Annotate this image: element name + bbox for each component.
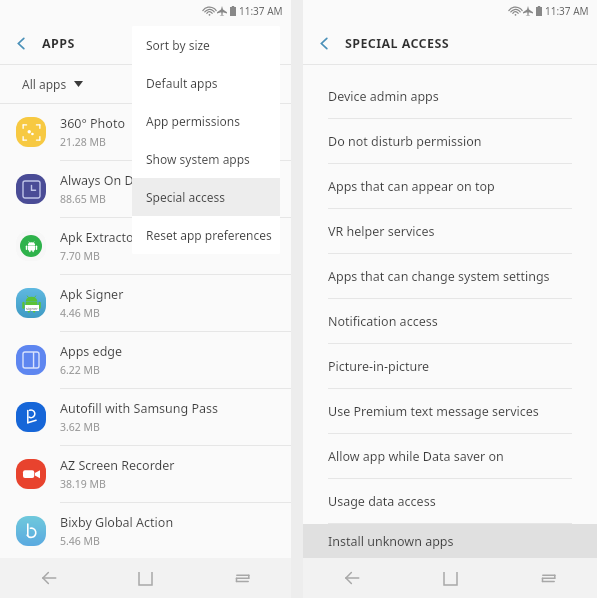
staticText: 7.70 MB xyxy=(60,249,100,263)
staticText: Device admin apps xyxy=(328,88,439,105)
staticText: 360° Photo xyxy=(60,115,125,132)
button[interactable]: Use Premium text message services xyxy=(303,389,597,433)
staticText: Notification access xyxy=(328,313,438,330)
button[interactable]: All apps xyxy=(0,65,291,103)
button[interactable]: Default apps xyxy=(132,64,280,102)
button[interactable]: Apps that can appear on top xyxy=(303,164,597,208)
staticText: Install unknown apps xyxy=(328,533,454,550)
staticText: Apps that can appear on top xyxy=(328,178,495,195)
button[interactable]: Back xyxy=(0,558,97,598)
button[interactable]: Recents xyxy=(499,558,597,598)
button[interactable]: Picture-in-picture xyxy=(303,344,597,388)
button[interactable]: Do not disturb permission xyxy=(303,119,597,163)
button[interactable]: Home xyxy=(401,558,499,598)
button[interactable]: 360° Photo xyxy=(0,104,291,160)
button[interactable]: Install unknown apps xyxy=(303,524,597,558)
button[interactable]: Autofill with Samsung Pass xyxy=(0,389,291,445)
staticText: Use Premium text message services xyxy=(328,403,539,420)
button[interactable]: Usage data access xyxy=(303,479,597,523)
staticText: 38.19 MB xyxy=(60,477,106,491)
staticText: Apk Extractor xyxy=(60,229,139,246)
button[interactable]: Apps that can change system settings xyxy=(303,254,597,298)
button[interactable]: Show system apps xyxy=(132,140,280,178)
staticText: Do not disturb permission xyxy=(328,133,482,150)
staticText: Apk Signer xyxy=(60,286,124,303)
staticText: Bixby Global Action xyxy=(60,514,174,531)
staticText: Show system apps xyxy=(146,151,250,167)
staticText: SPECIAL ACCESS xyxy=(345,35,450,52)
button[interactable]: Back xyxy=(303,22,345,64)
button[interactable]: App permissions xyxy=(132,102,280,140)
button[interactable]: Sort by size xyxy=(132,26,280,64)
staticText: Autofill with Samsung Pass xyxy=(60,400,219,417)
staticText: 11:37 AM xyxy=(545,4,589,18)
staticText: 6.22 MB xyxy=(60,363,100,377)
staticText: Picture-in-picture xyxy=(328,358,430,375)
staticText: 88.65 MB xyxy=(60,192,106,206)
staticText: Default apps xyxy=(146,75,218,91)
button[interactable]: Apk Extractor xyxy=(0,218,291,274)
staticText: 3.62 MB xyxy=(60,420,100,434)
button[interactable]: signer xyxy=(0,275,291,331)
staticText: Sort by size xyxy=(146,37,210,53)
button[interactable]: Always On Display xyxy=(0,161,291,217)
staticText: Usage data access xyxy=(328,493,436,510)
staticText: 21.28 MB xyxy=(60,135,106,149)
button[interactable]: Special access xyxy=(132,178,280,216)
button[interactable]: Apps edge xyxy=(0,332,291,388)
staticText: All apps xyxy=(22,76,67,92)
button[interactable]: Notification access xyxy=(303,299,597,343)
button[interactable]: Device admin apps xyxy=(303,74,597,118)
staticText: Reset app preferences xyxy=(146,227,272,243)
staticText: AZ Screen Recorder xyxy=(60,457,175,474)
button[interactable]: Reset app preferences xyxy=(132,216,280,254)
staticText: signer xyxy=(26,306,38,311)
button[interactable]: AZ Screen Recorder xyxy=(0,446,291,502)
button[interactable]: Back xyxy=(303,558,401,598)
staticText: 11:37 AM xyxy=(239,4,283,18)
staticText: 5.46 MB xyxy=(60,534,100,548)
staticText: App permissions xyxy=(146,113,240,129)
staticText: Apps edge xyxy=(60,343,123,360)
button[interactable]: Back xyxy=(0,22,42,64)
button[interactable]: VR helper services xyxy=(303,209,597,253)
staticText: VR helper services xyxy=(328,223,435,240)
button[interactable]: Allow app while Data saver on xyxy=(303,434,597,478)
staticText: Allow app while Data saver on xyxy=(328,448,504,465)
staticText: Special access xyxy=(146,189,226,205)
button[interactable]: Bixby Global Action xyxy=(0,503,291,558)
staticText: Always On Display xyxy=(60,172,168,189)
staticText: Apps that can change system settings xyxy=(328,268,550,285)
button[interactable]: Recents xyxy=(194,558,291,598)
staticText: 4.46 MB xyxy=(60,306,100,320)
staticText: APPS xyxy=(42,35,75,52)
button[interactable]: Home xyxy=(97,558,194,598)
